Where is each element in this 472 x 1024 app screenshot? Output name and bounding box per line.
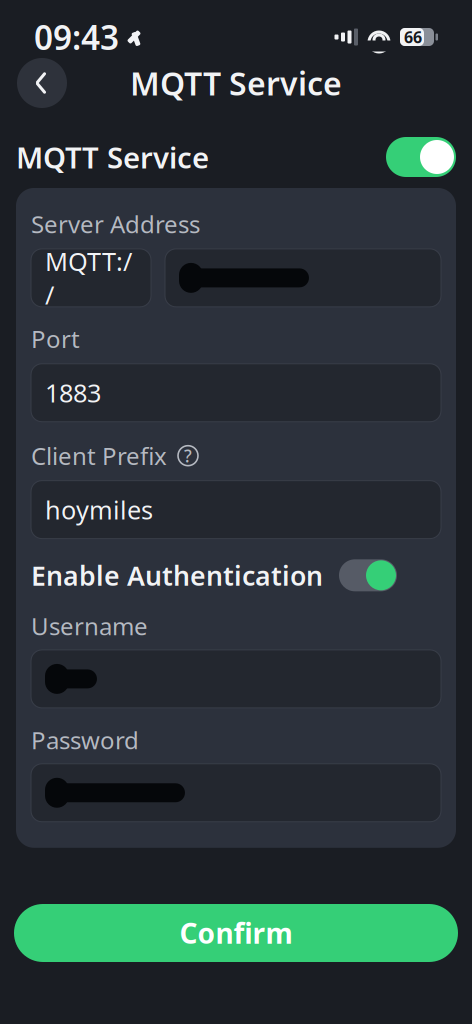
staticText: Password [31,724,139,756]
staticText: 1883 [45,376,101,409]
staticText: ? [184,444,192,467]
staticText: MQTT Service [130,62,342,104]
button[interactable]: Help about client prefix [177,445,199,467]
staticText: Server Address [31,208,200,240]
staticText: MQTT Service [16,137,209,176]
staticText: Confirm [179,914,292,952]
staticText: Enable Authentication [31,558,323,593]
staticText: 09:43 [34,15,119,59]
staticText: Username [31,610,148,642]
button[interactable]: MQTT Service enabled [386,137,456,177]
staticText: Client Prefix [31,440,167,472]
button[interactable]: Confirm [14,904,458,962]
staticText: 66 [404,26,422,48]
staticText: hoymiles [45,493,153,526]
staticText: MQTT:// [45,244,132,311]
staticText: Port [31,323,80,355]
button[interactable]: Back [17,58,67,108]
button[interactable]: Enable Authentication [339,559,397,591]
